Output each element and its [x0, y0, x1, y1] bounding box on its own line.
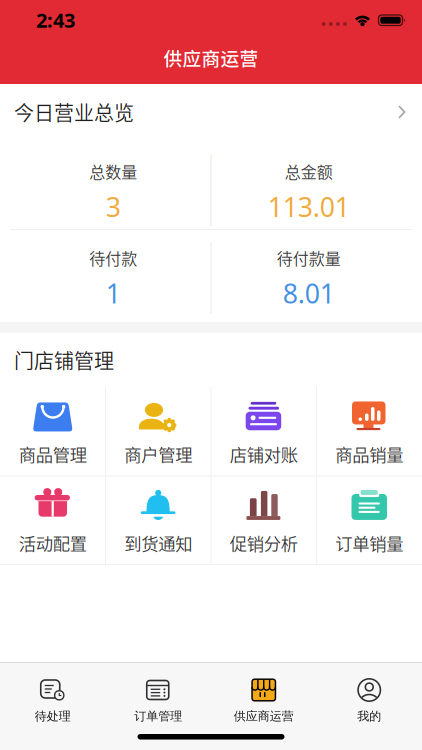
staticText: 总金额 — [285, 160, 333, 183]
staticText: 我的 — [357, 709, 381, 724]
staticText: 1 — [106, 275, 121, 311]
staticText: 3 — [106, 189, 121, 224]
staticText: 店铺对账 — [230, 441, 298, 467]
staticText: 今日营业总览 — [14, 97, 134, 126]
button[interactable]: 店铺对账 — [211, 387, 316, 476]
staticText: 8.01 — [283, 275, 335, 311]
staticText: 促销分析 — [230, 530, 298, 556]
staticText: 113.01 — [268, 189, 350, 224]
button[interactable]: 商品销量 — [316, 387, 422, 476]
staticText: 订单管理 — [134, 709, 182, 724]
staticText: 门店铺管理 — [14, 345, 114, 374]
staticText: 待处理 — [35, 709, 71, 724]
staticText: 待付款量 — [277, 246, 341, 269]
staticText: 2:43 — [36, 7, 75, 33]
staticText: 订单销量 — [335, 530, 403, 556]
staticText: 商品销量 — [335, 441, 403, 467]
button[interactable]: 活动配置 — [0, 476, 105, 565]
button[interactable]: 待处理 — [0, 678, 105, 724]
button[interactable]: 商户管理 — [105, 387, 211, 476]
staticText: 总数量 — [89, 160, 137, 183]
button[interactable]: 今日营业总览 — [0, 84, 422, 140]
button[interactable]: 促销分析 — [211, 476, 316, 565]
staticText: 供应商运营 — [163, 44, 258, 71]
button[interactable]: 商品管理 — [0, 387, 105, 476]
staticText: 商品管理 — [19, 441, 87, 467]
button[interactable]: 订单销量 — [316, 476, 422, 565]
button[interactable]: 我的 — [316, 678, 422, 724]
staticText: 待付款 — [89, 246, 137, 269]
button[interactable]: 到货通知 — [105, 476, 211, 565]
staticText: 商户管理 — [124, 441, 192, 467]
staticText: 供应商运营 — [234, 709, 294, 724]
button[interactable]: 供应商运营 — [211, 678, 316, 724]
staticText: 活动配置 — [19, 530, 87, 556]
button[interactable]: 订单管理 — [105, 678, 211, 724]
staticText: 到货通知 — [124, 530, 192, 556]
